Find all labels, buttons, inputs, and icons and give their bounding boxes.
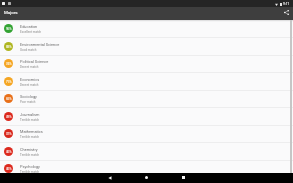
- button[interactable]: 49%: [0, 108, 293, 125]
- staticText: 40%: [6, 150, 12, 153]
- staticText: Chemistry: [20, 147, 38, 152]
- staticText: 71%: [6, 80, 12, 83]
- staticText: Mathematics: [20, 129, 43, 134]
- staticText: Journalism: [20, 112, 40, 117]
- staticText: Terrible match: [20, 118, 40, 121]
- button[interactable]: 88%: [0, 38, 293, 55]
- button[interactable]: 65%: [0, 90, 293, 107]
- staticText: 96%: [6, 27, 12, 30]
- staticText: Sociology: [20, 94, 37, 99]
- staticText: Majors: [4, 10, 18, 15]
- button[interactable]: 96%: [0, 20, 293, 37]
- staticText: 40%: [6, 167, 12, 170]
- staticText: Terrible match: [20, 135, 40, 138]
- staticText: 74%: [6, 62, 12, 65]
- staticText: 37%: [6, 132, 12, 135]
- staticText: 88%: [6, 45, 12, 48]
- staticText: Terrible match: [20, 170, 40, 173]
- staticText: Environmental Science: [20, 42, 60, 47]
- button[interactable]: 37%: [0, 125, 293, 142]
- button[interactable]: Recents: [178, 173, 188, 182]
- staticText: Decent match: [20, 65, 39, 68]
- button[interactable]: Home: [141, 173, 151, 182]
- staticText: Decent match: [20, 83, 39, 86]
- staticText: Education: [20, 24, 38, 29]
- button[interactable]: Share: [281, 7, 291, 17]
- staticText: Economics: [20, 77, 40, 82]
- staticText: Psychology: [20, 164, 40, 169]
- button[interactable]: 74%: [0, 55, 293, 72]
- staticText: Good match: [20, 48, 37, 51]
- button[interactable]: Back: [105, 173, 115, 182]
- button[interactable]: 40%: [0, 143, 293, 160]
- button[interactable]: 40%: [0, 160, 293, 177]
- staticText: Poor match: [20, 100, 36, 103]
- staticText: 49%: [6, 115, 12, 118]
- staticText: 65%: [6, 97, 12, 100]
- staticText: Excellent match: [20, 30, 42, 33]
- staticText: 9:11: [283, 2, 290, 6]
- button[interactable]: 71%: [0, 73, 293, 90]
- staticText: Political Science: [20, 59, 49, 64]
- staticText: Terrible match: [20, 153, 40, 156]
